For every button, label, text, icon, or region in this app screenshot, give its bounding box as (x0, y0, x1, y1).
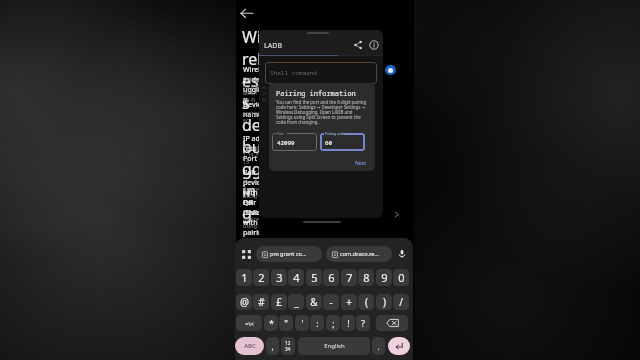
staticText: Shell command (270, 69, 317, 77)
button[interactable]: - (323, 294, 339, 310)
button[interactable]: com.draco.re… (326, 246, 392, 262)
staticText: 9 (381, 270, 388, 285)
button[interactable]: Information (369, 40, 379, 50)
staticText: ) (383, 295, 386, 309)
button[interactable]: Back (239, 6, 257, 20)
staticText: Next (355, 160, 366, 167)
staticText: LADB (264, 41, 283, 51)
staticText: / (399, 295, 403, 309)
staticText: . (377, 341, 380, 352)
staticText: Pair device with pairing (243, 198, 259, 238)
staticText: 42099 (277, 139, 295, 147)
staticText: & (310, 295, 318, 309)
button[interactable]: / (393, 294, 409, 310)
staticText: Wireless debugging (242, 26, 259, 224)
staticText: ( (365, 295, 368, 309)
staticText: 11 (262, 91, 267, 96)
staticText: Pair device with QR code (243, 168, 259, 218)
button[interactable]: £ (271, 294, 287, 310)
staticText: 5 (311, 270, 318, 285)
staticText: * (269, 317, 274, 329)
button[interactable]: 2 (253, 269, 269, 286)
button[interactable]: 6 (323, 269, 339, 286)
button[interactable]: Voice input (394, 246, 410, 262)
button[interactable]: 60 (320, 133, 365, 151)
staticText: 2 (258, 270, 265, 285)
button[interactable]: Next (349, 158, 371, 168)
button[interactable]: 5 (306, 269, 322, 286)
button[interactable]: Run command (385, 65, 396, 75)
staticText: , (271, 341, 274, 352)
button[interactable]: : (310, 315, 324, 331)
staticText: Debugging mode when Wi-Fi (243, 75, 259, 103)
button[interactable]: 1 (236, 269, 252, 286)
button[interactable]: * (264, 315, 278, 331)
button[interactable]: Enter (388, 337, 410, 355)
staticText: English (324, 342, 345, 350)
staticText: 8 (363, 270, 370, 285)
button[interactable]: & (306, 294, 322, 310)
staticText: 192.168.1.14:37215 (243, 144, 259, 165)
staticText: _ (294, 295, 299, 309)
button[interactable]: " (279, 315, 293, 331)
button[interactable]: 0 (393, 269, 409, 286)
staticText: # (258, 295, 265, 309)
staticText: Wireless debugging (243, 65, 259, 105)
button[interactable]: Shell command (265, 62, 377, 84)
button[interactable]: ? (356, 315, 370, 331)
button[interactable]: Share (353, 40, 363, 50)
staticText: Device name (243, 100, 259, 120)
button[interactable]: # (253, 294, 269, 310)
button[interactable]: Open toolbar (238, 246, 254, 262)
staticText: " (284, 317, 288, 329)
button[interactable]: 3 (271, 269, 287, 286)
button[interactable]: ( (358, 294, 374, 310)
staticText: 06 (262, 85, 267, 90)
button[interactable]: ABC (235, 337, 264, 355)
button[interactable]: 12 (281, 337, 295, 355)
staticText: @ (240, 295, 249, 309)
button[interactable]: 42099 (272, 133, 317, 151)
staticText: Pairing code (325, 131, 345, 135)
button[interactable]: ) (376, 294, 392, 310)
staticText: : (316, 317, 319, 329)
staticText: ! (347, 317, 350, 329)
staticText: 0 (398, 270, 405, 285)
button[interactable]: Backspace (376, 315, 408, 331)
button[interactable]: ; (326, 315, 340, 331)
button[interactable]: + (341, 294, 357, 310)
staticText: Pair new devices using six (243, 208, 259, 229)
button[interactable]: 9 (376, 269, 392, 286)
staticText: 04 (262, 97, 267, 102)
button[interactable]: 7 (341, 269, 357, 286)
button[interactable]: , (266, 337, 279, 355)
staticText: ABC (244, 342, 256, 350)
staticText: 12 (285, 340, 291, 346)
staticText: =\< (245, 320, 254, 327)
staticText: com.draco.re… (340, 250, 379, 258)
button[interactable]: pm grant co… (256, 246, 322, 262)
staticText: + (346, 295, 352, 309)
staticText: 60 (325, 139, 332, 147)
button[interactable]: ' (295, 315, 309, 331)
staticText: You can find the port and the 6-digit pa… (276, 99, 369, 126)
button[interactable]: Expand (391, 208, 402, 220)
staticText: Pair new devices using QR (243, 178, 259, 199)
staticText: ; (332, 317, 335, 329)
staticText: 1 (241, 270, 248, 285)
button[interactable]: =\< (236, 315, 262, 331)
button[interactable]: 8 (358, 269, 374, 286)
button[interactable]: . (372, 337, 385, 355)
button[interactable]: English (298, 337, 370, 355)
button[interactable]: @ (236, 294, 252, 310)
staticText: IP address & Port (243, 134, 259, 164)
staticText: Port (277, 131, 284, 135)
staticText: pm grant co… (270, 250, 307, 258)
staticText: ' (301, 317, 304, 329)
staticText: - (329, 295, 333, 309)
button[interactable]: 4 (288, 269, 304, 286)
staticText: £ (276, 295, 282, 309)
button[interactable]: ! (341, 315, 355, 331)
staticText: 3 (276, 270, 283, 285)
button[interactable]: _ (288, 294, 304, 310)
